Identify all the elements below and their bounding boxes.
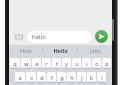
button[interactable]: Help	[9, 45, 42, 56]
staticText: q	[13, 60, 17, 67]
staticText: j	[81, 74, 83, 81]
staticText: hello	[32, 33, 46, 41]
button[interactable]: Jello	[78, 45, 112, 56]
button[interactable]: i	[82, 58, 91, 69]
button[interactable]: d	[37, 72, 46, 83]
staticText: k	[90, 74, 93, 81]
staticText: t	[56, 60, 58, 67]
button[interactable]: k	[87, 72, 96, 83]
staticText: e	[35, 60, 39, 67]
button[interactable]: w	[21, 58, 31, 69]
staticText: Help	[20, 47, 32, 54]
button[interactable]: Send	[95, 30, 108, 43]
button[interactable]: j	[77, 72, 86, 83]
staticText: l	[101, 74, 103, 81]
button[interactable]: q	[10, 58, 20, 69]
staticText: r	[45, 60, 48, 67]
staticText: o	[95, 60, 99, 67]
button[interactable]: hello	[27, 31, 92, 43]
staticText: g	[60, 74, 64, 81]
staticText: h	[70, 74, 74, 81]
button[interactable]: h	[67, 72, 76, 83]
button[interactable]: Attach media	[13, 31, 24, 42]
staticText: d	[40, 74, 44, 81]
staticText: p	[105, 60, 109, 67]
button[interactable]: g	[57, 72, 66, 83]
button[interactable]: f	[47, 72, 56, 83]
staticText: Hello	[53, 47, 68, 54]
staticText: w	[24, 60, 29, 67]
button[interactable]: u	[72, 58, 81, 69]
staticText: u	[75, 60, 79, 67]
staticText: y	[65, 60, 68, 67]
staticText: a	[18, 74, 22, 81]
button[interactable]: p	[102, 58, 111, 69]
button[interactable]: o	[92, 58, 101, 69]
button[interactable]: Hello	[43, 45, 77, 56]
button[interactable]: l	[97, 72, 106, 83]
button[interactable]: t	[52, 58, 61, 69]
button[interactable]: s	[26, 72, 36, 83]
staticText: i	[86, 60, 88, 67]
staticText: s	[30, 74, 33, 81]
button[interactable]: r	[42, 58, 51, 69]
button[interactable]: e	[32, 58, 41, 69]
button[interactable]: a	[15, 72, 25, 83]
button[interactable]: y	[62, 58, 71, 69]
staticText: f	[51, 74, 53, 81]
staticText: Jello	[90, 47, 101, 54]
